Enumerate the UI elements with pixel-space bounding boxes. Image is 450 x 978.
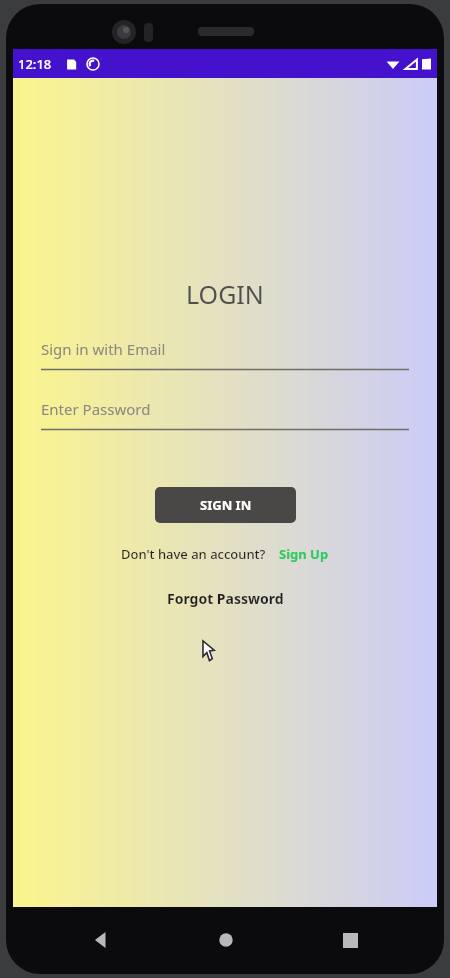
button[interactable]: Forgot Password	[167, 589, 284, 608]
staticText: Sign Up	[279, 545, 329, 563]
button[interactable]: Sign Up	[266, 545, 329, 563]
button[interactable]: SIGN IN	[155, 487, 296, 523]
staticText: Don't have an account?	[121, 545, 266, 563]
staticText: 12:18	[18, 55, 52, 73]
staticText: SIGN IN	[200, 496, 252, 514]
button[interactable]: Home	[163, 923, 288, 957]
button[interactable]: Back	[38, 923, 163, 957]
staticText: Enter Password	[41, 399, 151, 419]
staticText: LOGIN	[186, 277, 264, 311]
button[interactable]: Sign in with Email	[41, 339, 409, 370]
button[interactable]: Enter Password	[41, 399, 409, 430]
staticText: Forgot Password	[167, 589, 284, 608]
staticText: Sign in with Email	[41, 339, 166, 359]
button[interactable]: Recent apps	[288, 923, 413, 957]
